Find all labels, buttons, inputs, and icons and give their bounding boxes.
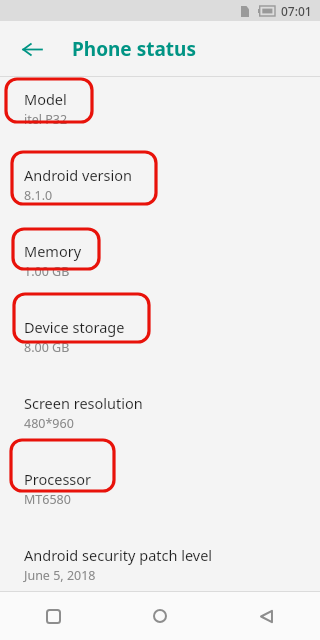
staticText: Processor xyxy=(24,469,92,489)
staticText: Device storage xyxy=(24,317,125,337)
button[interactable]: Processor xyxy=(0,462,320,515)
staticText: Phone status xyxy=(72,36,196,62)
staticText: Screen resolution xyxy=(24,393,143,413)
staticText: Model xyxy=(24,89,67,109)
button[interactable]: Device storage xyxy=(0,310,320,363)
button[interactable]: Recent apps xyxy=(0,592,106,640)
staticText: 8.1.0 xyxy=(24,187,53,204)
staticText: June 5, 2018 xyxy=(24,567,96,584)
staticText: Memory xyxy=(24,241,82,261)
button[interactable]: Back xyxy=(213,592,320,640)
button[interactable]: Android version xyxy=(0,158,320,211)
button[interactable]: Back xyxy=(10,27,54,71)
staticText: 07:01 xyxy=(281,3,312,19)
staticText: 8.00 GB xyxy=(24,339,70,356)
button[interactable]: Screen resolution xyxy=(0,386,320,439)
staticText: Android version xyxy=(24,165,132,185)
staticText: MT6580 xyxy=(24,491,71,508)
staticText: itel P32 xyxy=(24,111,68,128)
button[interactable]: Model xyxy=(0,82,320,135)
staticText: Android security patch level xyxy=(24,545,213,565)
button[interactable]: Android security patch level xyxy=(0,538,320,591)
staticText: 1.00 GB xyxy=(24,263,70,280)
button[interactable]: Home xyxy=(106,592,213,640)
button[interactable]: Memory xyxy=(0,234,320,287)
staticText: 480*960 xyxy=(24,415,74,432)
